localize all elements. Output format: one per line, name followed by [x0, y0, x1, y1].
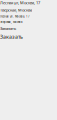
staticText: Заказать	[0, 26, 16, 31]
staticText: Лесная ул, Москва, 17	[0, 15, 30, 18]
staticText: Лесная ул, Москва, 17	[0, 0, 40, 5]
staticText: Заказать	[0, 33, 23, 40]
staticText: Тверская, Москва	[0, 20, 22, 24]
staticText: Тверская, Москва	[0, 7, 32, 13]
